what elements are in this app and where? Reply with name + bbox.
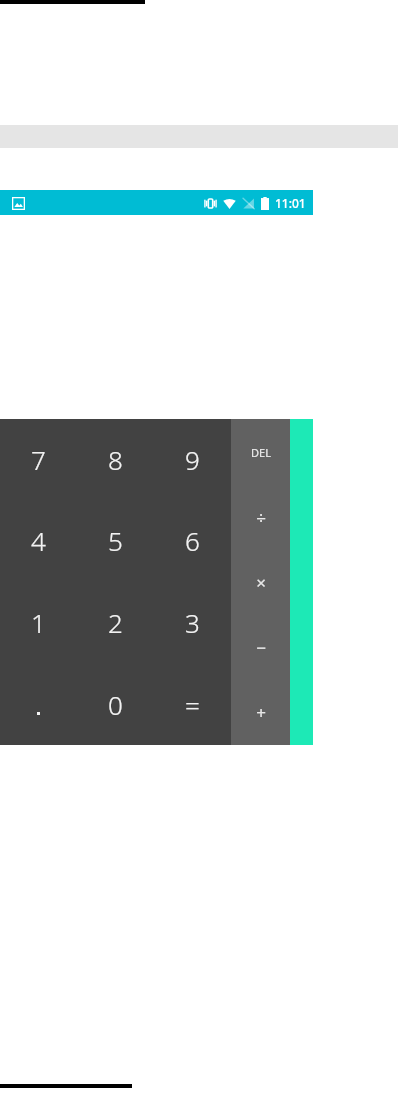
button[interactable]: 2 bbox=[77, 581, 154, 663]
staticText: 5 bbox=[108, 523, 123, 558]
button[interactable]: 3 bbox=[154, 581, 231, 663]
button[interactable]: 0 bbox=[77, 663, 154, 745]
button[interactable]: 6 bbox=[154, 500, 231, 581]
staticText: 7 bbox=[31, 442, 46, 477]
button[interactable]: − bbox=[231, 615, 290, 680]
staticText: DEL bbox=[251, 445, 271, 460]
button[interactable]: DEL bbox=[231, 419, 290, 485]
button[interactable]: ÷ bbox=[231, 485, 290, 550]
staticText: − bbox=[256, 636, 266, 659]
staticText: × bbox=[256, 571, 266, 594]
staticText: 3 bbox=[185, 605, 200, 640]
button[interactable]: 4 bbox=[0, 500, 77, 581]
staticText: 1 bbox=[31, 605, 46, 640]
staticText: 8 bbox=[108, 442, 123, 477]
staticText: 9 bbox=[185, 442, 200, 477]
button[interactable] bbox=[0, 663, 77, 745]
staticText: + bbox=[256, 701, 266, 724]
staticText: 0 bbox=[108, 687, 123, 722]
staticText: 4 bbox=[31, 523, 46, 558]
button[interactable]: 7 bbox=[0, 419, 77, 500]
staticText: = bbox=[185, 687, 200, 722]
button[interactable]: 8 bbox=[77, 419, 154, 500]
button[interactable]: + bbox=[231, 680, 290, 745]
button[interactable]: × bbox=[231, 550, 290, 615]
staticText: 2 bbox=[108, 605, 123, 640]
button[interactable]: 9 bbox=[154, 419, 231, 500]
button[interactable]: 5 bbox=[77, 500, 154, 581]
staticText: ÷ bbox=[256, 506, 266, 529]
staticText: 11:01 bbox=[275, 195, 306, 211]
button[interactable]: Screenshot captured bbox=[8, 193, 28, 213]
button[interactable]: = bbox=[154, 663, 231, 745]
button[interactable]: 1 bbox=[0, 581, 77, 663]
staticText: 6 bbox=[185, 523, 200, 558]
